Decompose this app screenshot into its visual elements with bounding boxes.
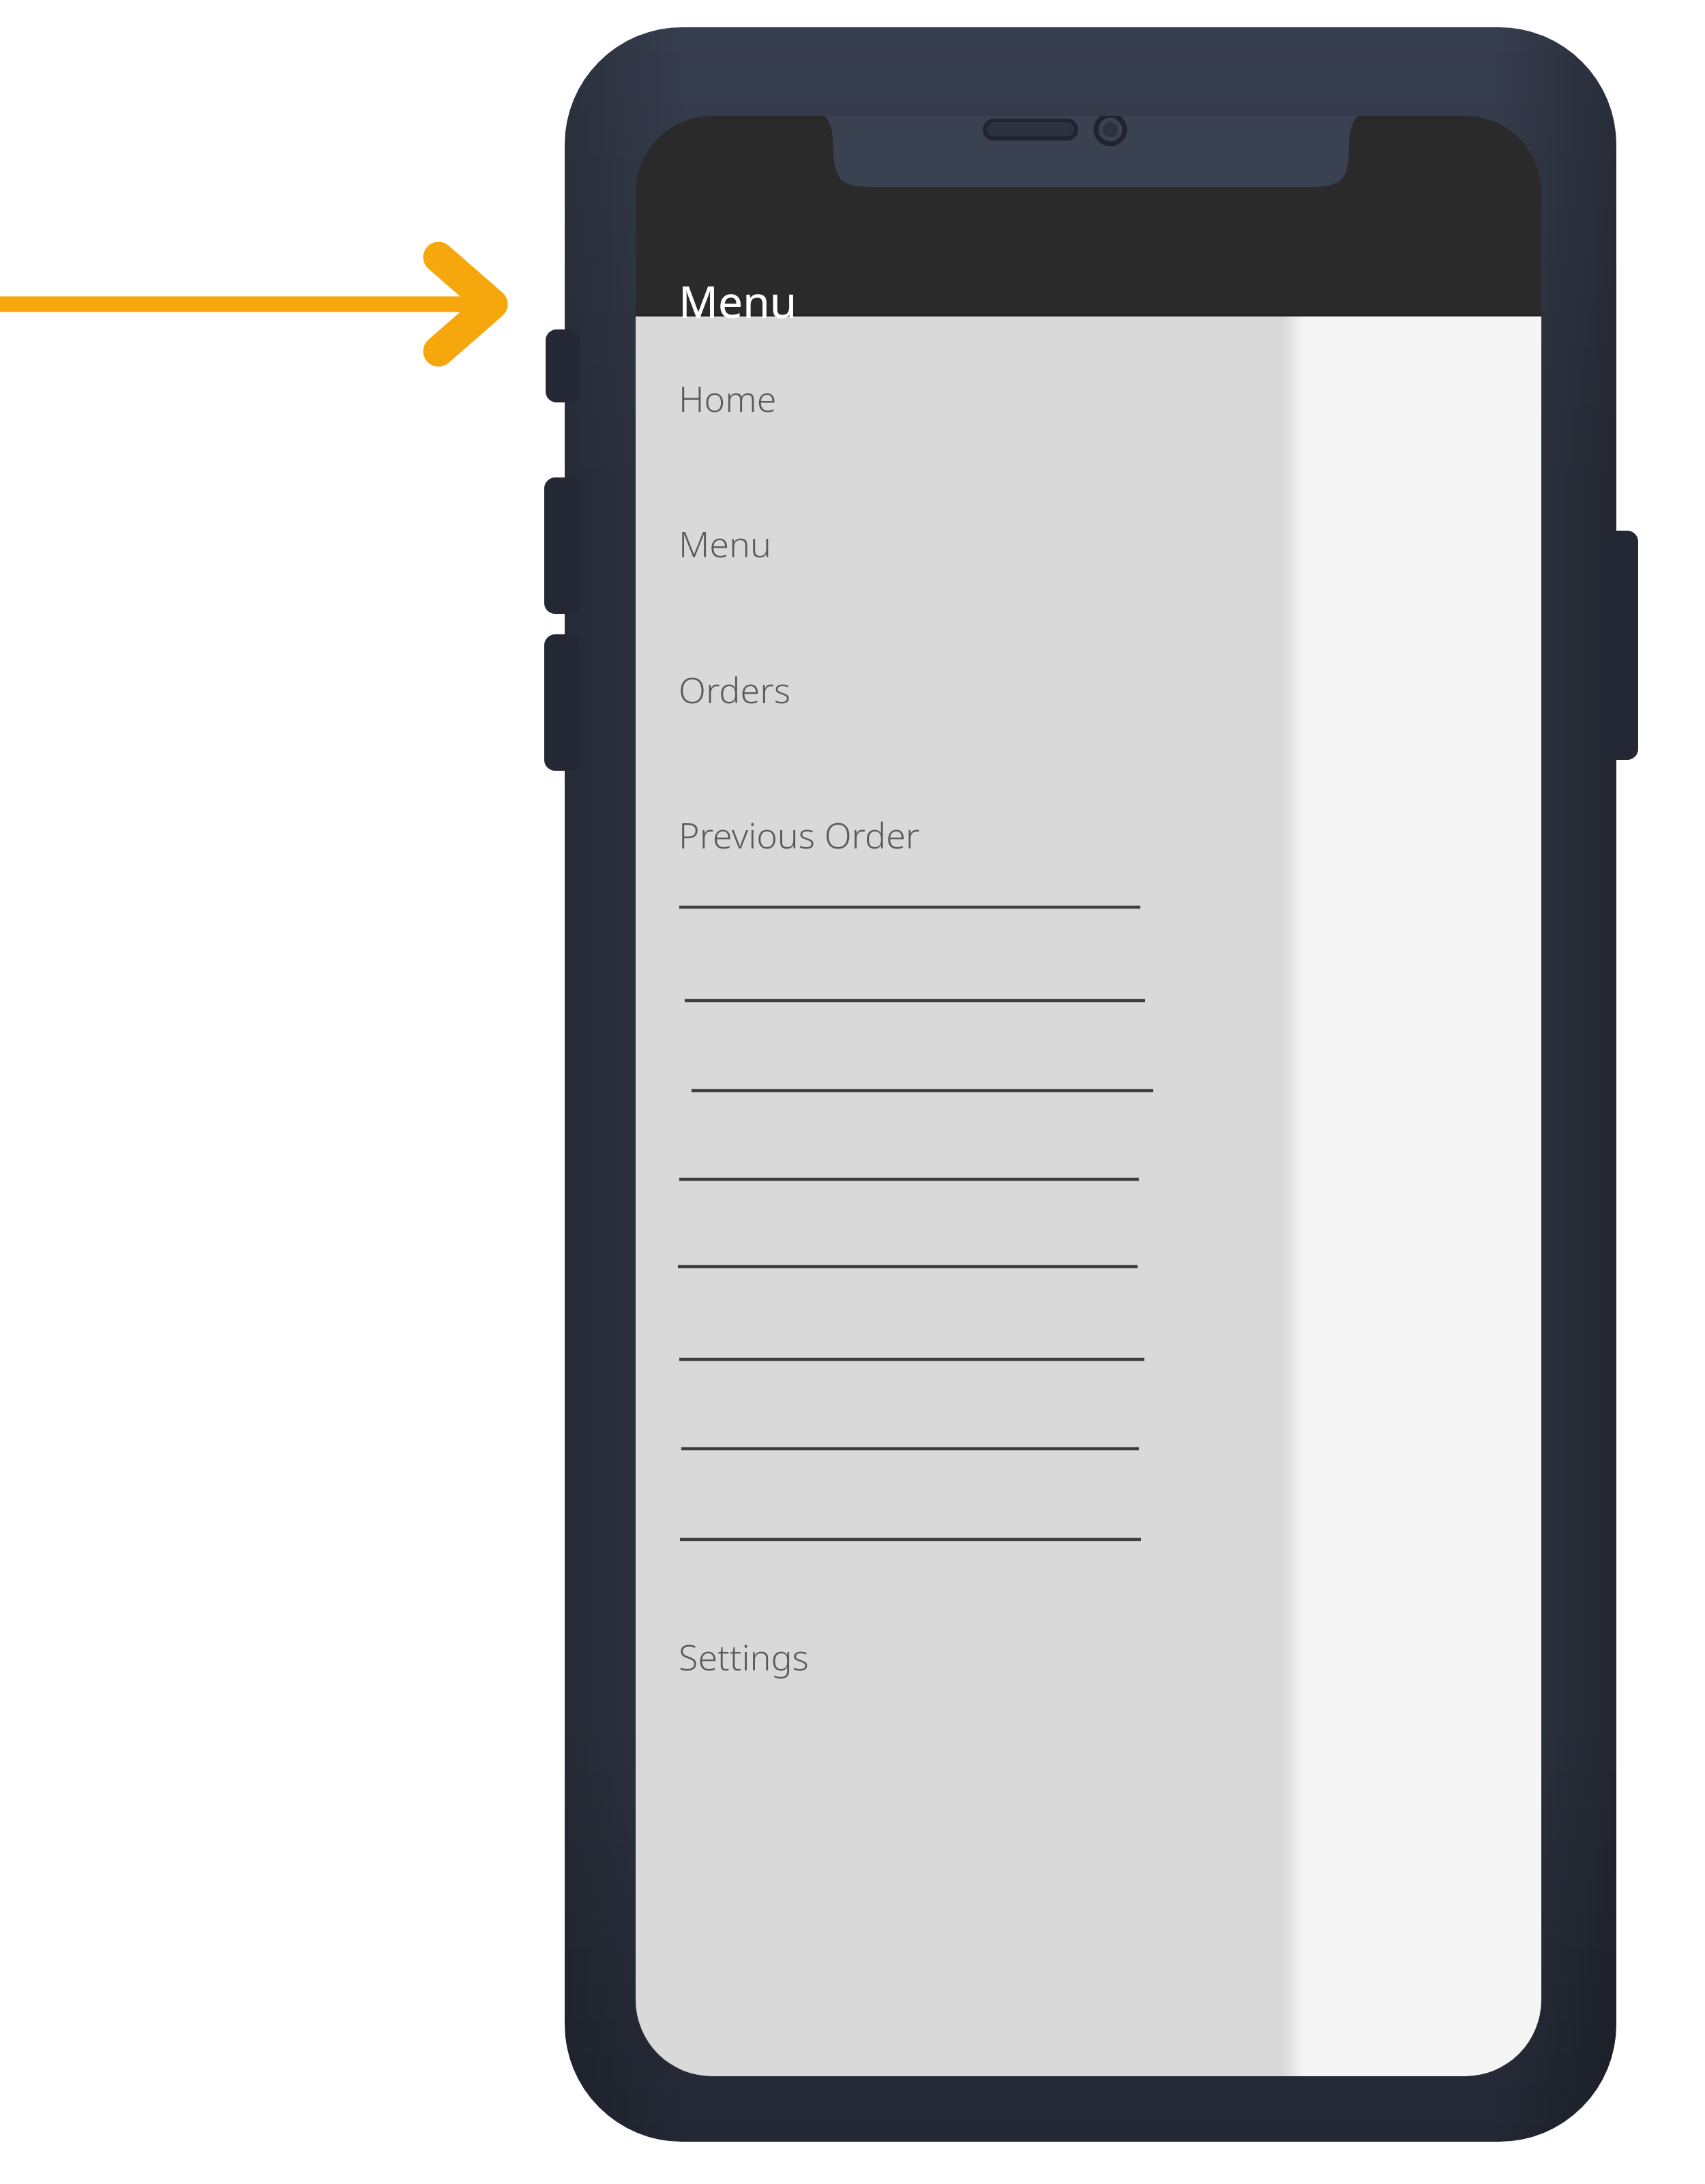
staticText: Previous Order — [679, 810, 920, 859]
button[interactable]: Home — [649, 353, 1249, 435]
staticText: Orders — [679, 665, 791, 713]
button[interactable]: Settings — [649, 1612, 1249, 1694]
button[interactable]: Previous Order — [649, 790, 1249, 872]
staticText: Settings — [679, 1632, 809, 1681]
staticText: Home — [679, 374, 777, 422]
staticText: Menu — [679, 271, 797, 331]
button[interactable]: Orders — [649, 645, 1249, 726]
staticText: Menu — [679, 519, 771, 567]
button[interactable]: Drawer title Menu — [649, 251, 1249, 333]
button[interactable]: Menu — [649, 499, 1249, 580]
